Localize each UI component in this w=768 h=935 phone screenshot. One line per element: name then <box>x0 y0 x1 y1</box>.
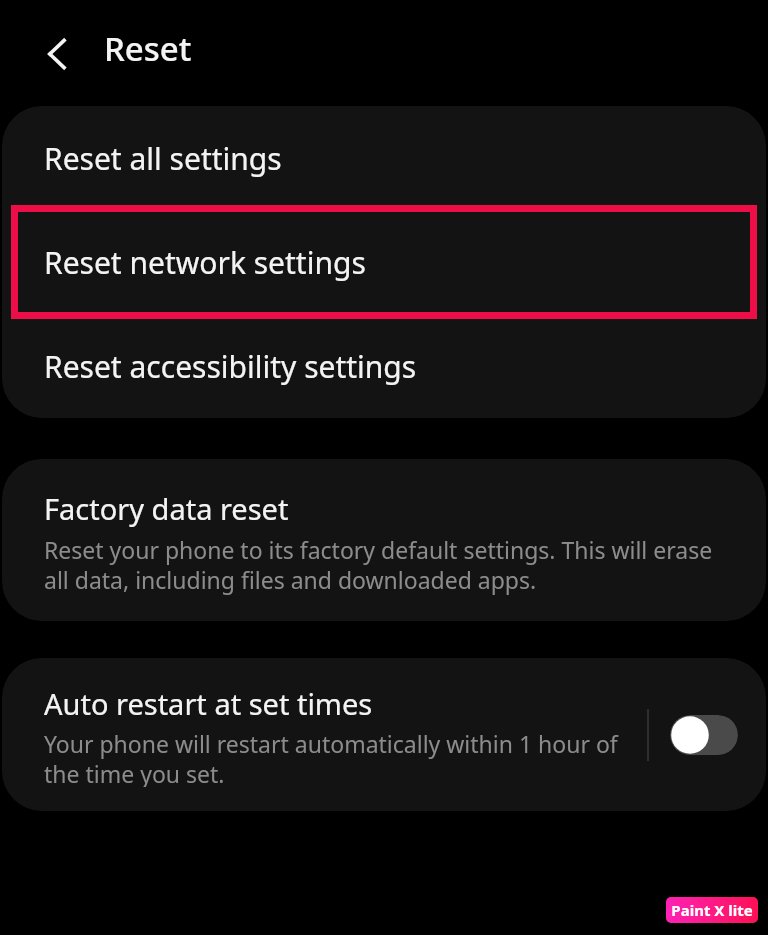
staticText: Reset all settings <box>44 138 282 179</box>
staticText: Reset accessibility settings <box>44 346 417 387</box>
staticText: Your phone will restart automatically wi… <box>44 728 637 787</box>
staticText: Reset your phone to its factory default … <box>44 534 726 595</box>
button[interactable]: Auto restart toggle <box>670 715 738 755</box>
button[interactable]: Auto restart at set times <box>2 658 647 811</box>
button[interactable]: Reset network settings <box>2 210 766 314</box>
staticText: Paint X lite <box>671 900 753 920</box>
button[interactable]: Back <box>30 26 86 82</box>
button[interactable]: Factory data reset <box>2 459 766 621</box>
button[interactable]: Reset all settings <box>2 106 766 210</box>
staticText: Factory data reset <box>44 489 289 528</box>
staticText: Auto restart at set times <box>44 684 373 723</box>
button[interactable]: Reset accessibility settings <box>2 314 766 418</box>
staticText: Reset <box>104 26 192 71</box>
staticText: Reset network settings <box>44 242 366 283</box>
